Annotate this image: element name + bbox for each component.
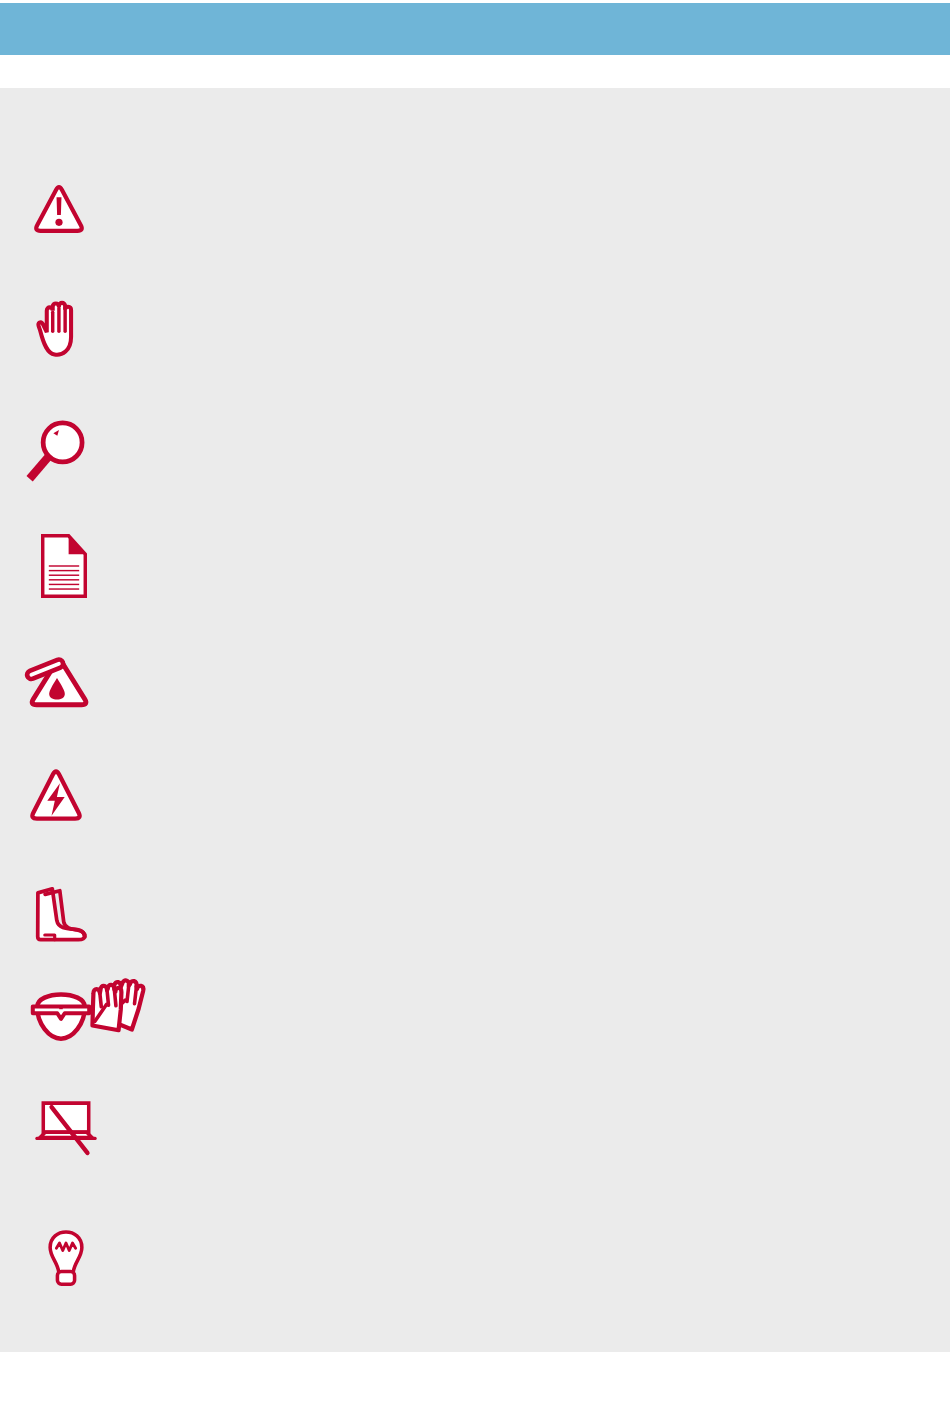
button[interactable]: Tip [40, 1224, 92, 1292]
button[interactable]: Wear safety boots [31, 882, 91, 944]
button[interactable]: No electronic devices [34, 1095, 98, 1151]
button[interactable]: Wear protective gloves [88, 976, 150, 1044]
button[interactable]: Corrosive substance [23, 649, 91, 711]
button[interactable]: Inspect [24, 419, 90, 485]
button[interactable]: Electrical hazard [26, 765, 86, 823]
button[interactable]: Read the documentation [41, 534, 87, 598]
button[interactable]: Wear eye protection [30, 981, 92, 1043]
button[interactable]: Warning [30, 181, 88, 235]
button[interactable]: Do not touch [33, 296, 87, 360]
